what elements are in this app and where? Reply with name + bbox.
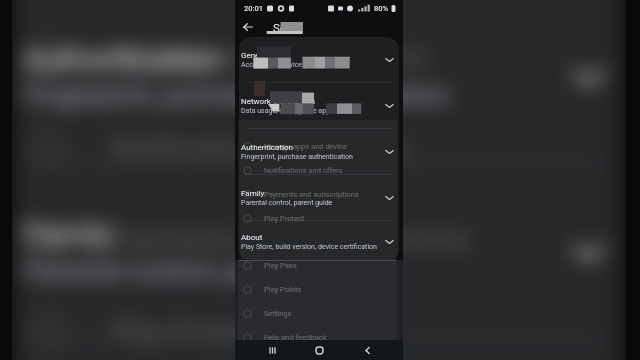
- staticText: Network preferences: [241, 97, 316, 106]
- staticText: Notifications and offers: [264, 166, 343, 175]
- staticText: Play Points: [264, 285, 302, 294]
- staticText: Fingerprint, purchase authentication: [23, 81, 450, 112]
- staticText: Play Protect: [264, 214, 305, 223]
- staticText: Play Store, build version, device certif…: [241, 243, 377, 251]
- staticText: Settings: [264, 309, 292, 318]
- staticText: Authentication: [241, 143, 293, 152]
- staticText: Play Protect: [110, 314, 267, 348]
- staticText: Se: [273, 21, 286, 34]
- staticText: Manage apps and device: [110, 40, 427, 74]
- staticText: 80%: [374, 4, 389, 13]
- staticText: Family: [241, 189, 265, 198]
- staticText: Family: [23, 219, 114, 253]
- staticText: 20:01: [244, 4, 264, 13]
- button[interactable]: Family: [239, 175, 399, 220]
- staticText: About: [241, 233, 263, 242]
- button[interactable]: About: [15, 341, 625, 360]
- button[interactable]: General: [239, 37, 399, 82]
- button[interactable]: Back: [356, 340, 378, 360]
- staticText: Parental control, parent guide: [23, 257, 373, 287]
- button[interactable]: Authentication: [239, 129, 399, 174]
- button[interactable]: Recent apps: [261, 340, 283, 360]
- staticText: Play Pass: [264, 261, 297, 270]
- staticText: Notifications and offers: [110, 131, 411, 165]
- button[interactable]: Home: [308, 340, 330, 360]
- button[interactable]: Family: [15, 165, 625, 337]
- staticText: Payments and subscriptions: [264, 190, 359, 199]
- button[interactable]: Back: [240, 19, 256, 35]
- staticText: Authentication: [23, 43, 221, 78]
- staticText: Account and device preferences: [241, 61, 341, 69]
- button[interactable]: About: [239, 221, 399, 262]
- staticText: Fingerprint, purchase authentication: [241, 153, 353, 161]
- button[interactable]: Authentication: [15, 0, 625, 161]
- staticText: Manage apps and device: [264, 142, 347, 151]
- staticText: Payments and subscriptions: [110, 222, 472, 257]
- staticText: Data usage, auto-update apps: [241, 107, 334, 115]
- button[interactable]: Network preferences: [239, 83, 399, 128]
- staticText: Help and feedback: [264, 333, 327, 342]
- staticText: General: [241, 51, 269, 60]
- staticText: Parental control, parent guide: [241, 199, 333, 207]
